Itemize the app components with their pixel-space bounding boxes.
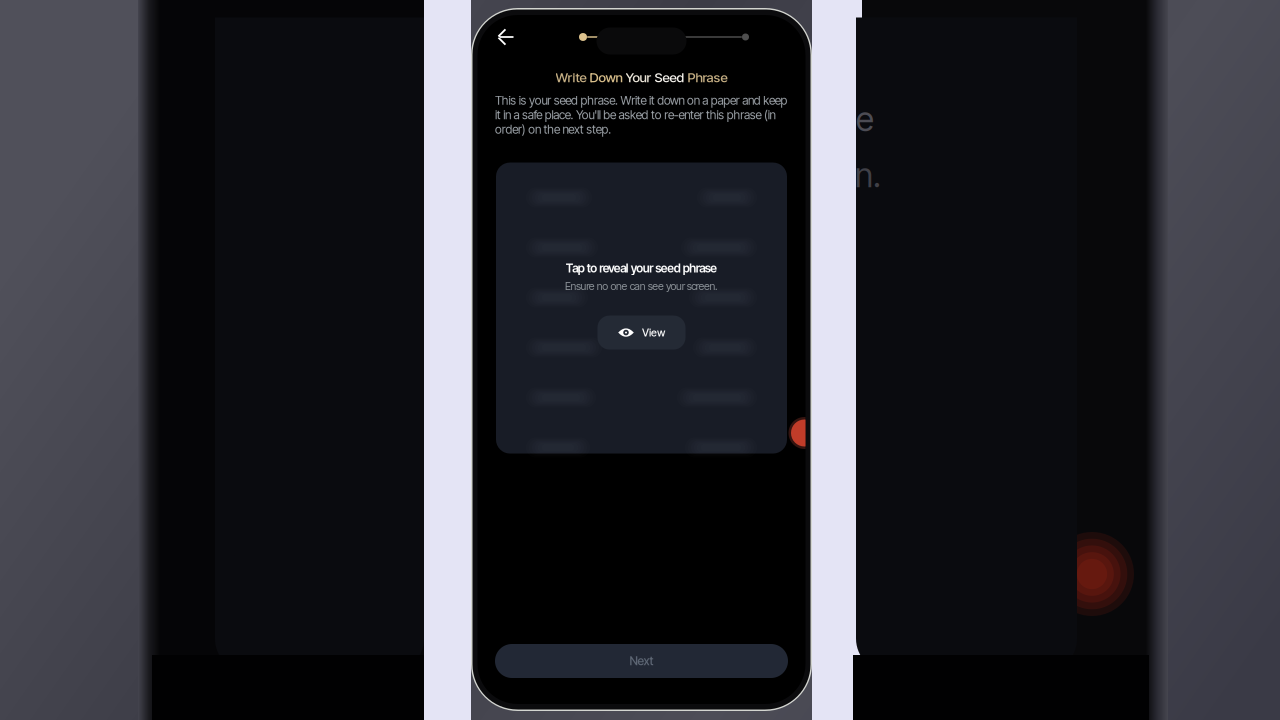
staticText: This is your seed phrase. Write it down … <box>495 93 787 137</box>
staticText: n. <box>855 155 881 195</box>
staticText: Next <box>629 654 653 668</box>
staticText: Write <box>555 69 589 85</box>
staticText: View <box>642 326 665 339</box>
staticText: Your <box>625 69 654 85</box>
staticText: Ensure no one can see your screen. <box>565 280 718 292</box>
staticText: e <box>856 99 874 139</box>
button[interactable]: Back <box>488 24 522 50</box>
button[interactable]: View <box>597 316 685 350</box>
staticText: Tap to reveal your seed phrase <box>566 261 717 275</box>
staticText: Phrase <box>687 69 727 85</box>
staticText: Seed <box>654 69 687 85</box>
button[interactable]: Next <box>495 644 788 678</box>
staticText: Down <box>589 69 625 85</box>
